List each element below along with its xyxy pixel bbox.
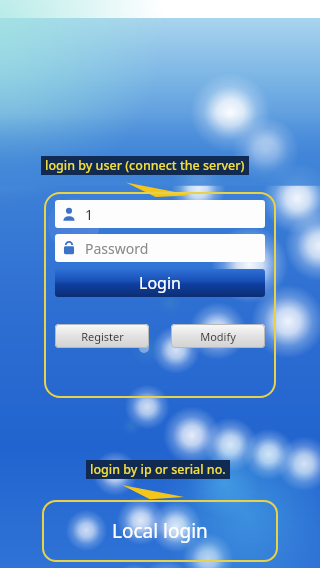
button[interactable]: Register (55, 324, 149, 348)
staticText: Modify (200, 329, 236, 344)
staticText: login by user (connect the server) (45, 157, 245, 174)
button[interactable]: Local login (42, 500, 278, 562)
staticText: login by ip or serial no. (90, 461, 226, 478)
button[interactable]: Password (55, 234, 265, 262)
staticText: Password (85, 239, 149, 258)
button[interactable]: 1 (55, 200, 265, 228)
button[interactable]: Login (55, 269, 265, 297)
staticText: Login (139, 272, 181, 294)
staticText: 1 (85, 205, 94, 224)
staticText: Register (81, 329, 124, 344)
button[interactable]: Modify (171, 324, 265, 348)
staticText: Local login (112, 518, 208, 544)
